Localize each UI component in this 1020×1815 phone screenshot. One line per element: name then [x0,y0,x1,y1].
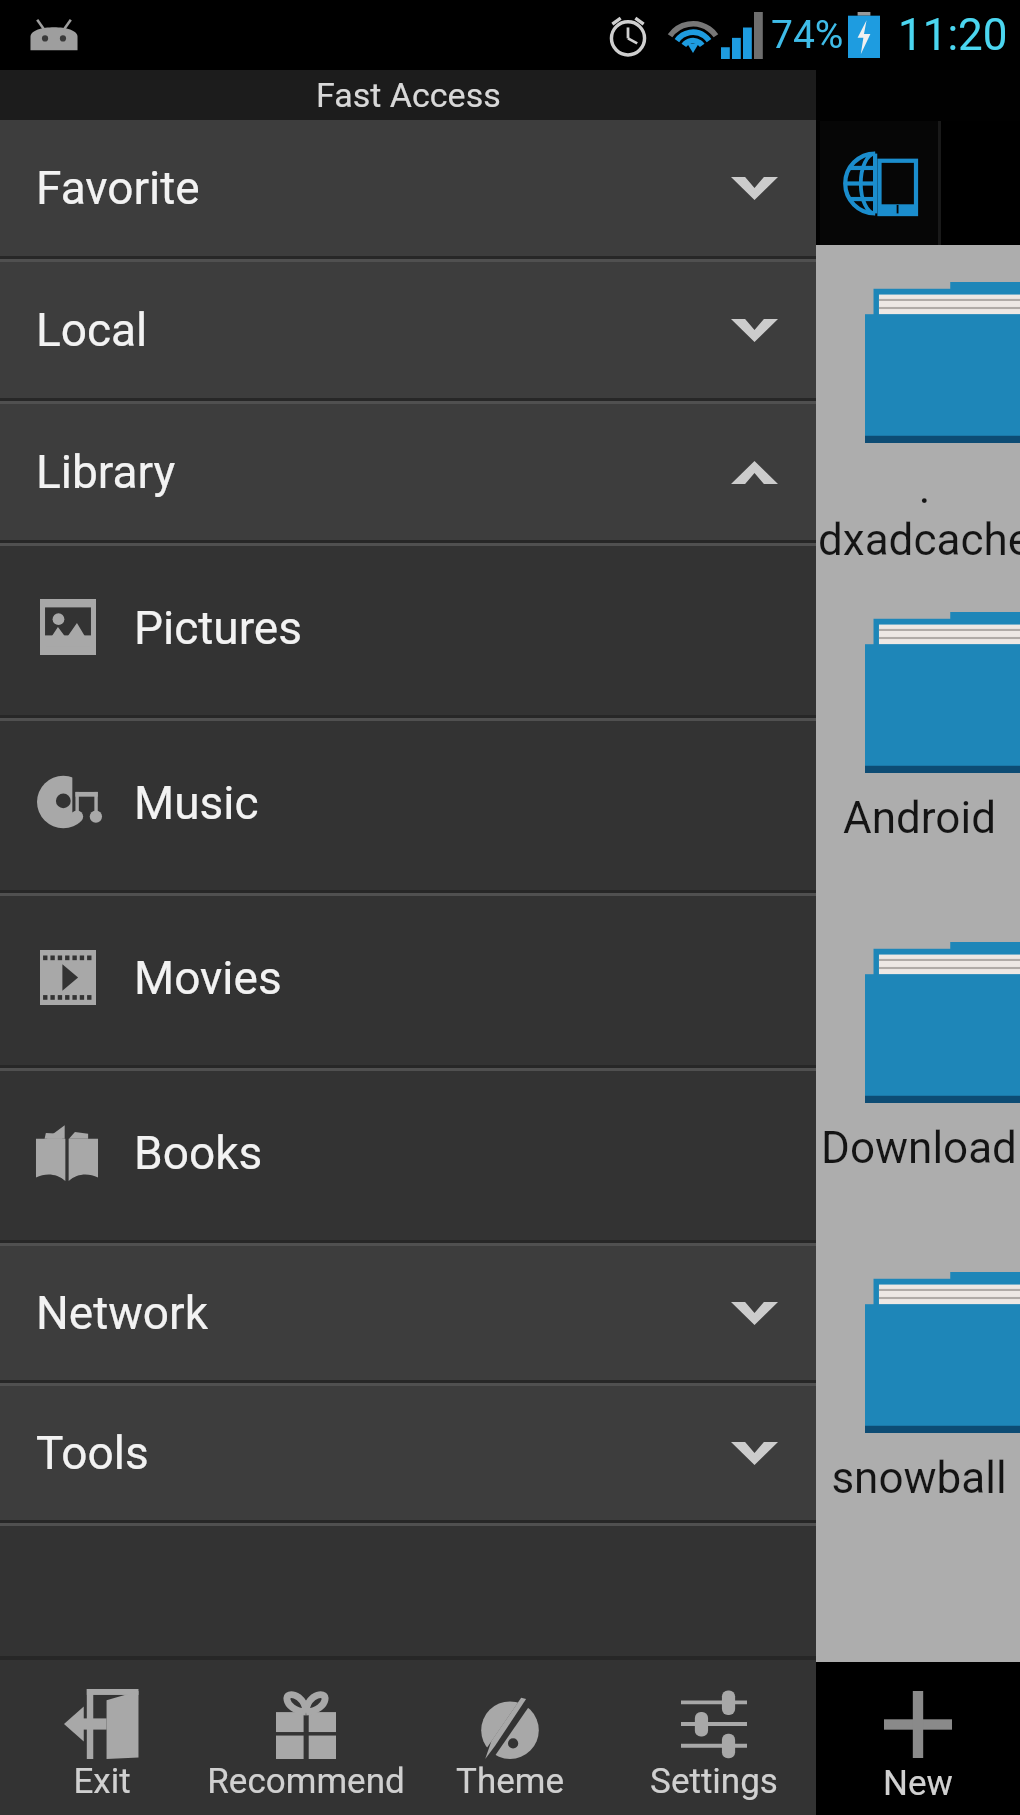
staticText: Library [36,445,176,499]
button[interactable]: Download [818,942,1020,1272]
button[interactable]: . dxadcache [818,282,1020,612]
staticText: New [883,1763,953,1804]
button[interactable]: Music [0,721,816,890]
button[interactable]: Library [0,404,816,540]
staticText: Tools [36,1426,149,1480]
button[interactable]: snowball [818,1272,1020,1602]
button[interactable]: Pictures [0,546,816,715]
button[interactable]: Android [818,612,1020,942]
staticText: Settings [650,1761,778,1802]
staticText: Local [36,303,148,357]
button[interactable]: Network [0,1246,816,1380]
staticText: Fast Access [316,75,501,115]
button[interactable]: Favorite [0,120,816,256]
staticText: 74% [771,12,844,58]
staticText: Pictures [134,601,302,655]
button[interactable]: Tools [0,1386,816,1520]
staticText: Books [134,1126,263,1180]
staticText: 11:20 [898,9,1008,61]
button[interactable]: Movies [0,896,816,1065]
staticText: Favorite [36,161,200,215]
staticText: Download [821,1122,1017,1174]
staticText: Exit [73,1761,131,1802]
button[interactable]: Theme [408,1660,612,1815]
button[interactable]: Books [0,1071,816,1240]
staticText: . dxadcache [818,462,1020,566]
button[interactable]: New [844,1662,992,1815]
staticText: Recommend [207,1761,405,1802]
button[interactable]: Settings [612,1660,816,1815]
button[interactable]: Exit [0,1660,204,1815]
staticText: Movies [134,951,282,1005]
staticText: Network [36,1286,208,1340]
staticText: Android [843,792,996,844]
button[interactable]: Local [0,262,816,398]
staticText: snowball [831,1452,1007,1504]
button[interactable]: Recommend [204,1660,408,1815]
button[interactable]: Remote manager [820,121,938,245]
staticText: Theme [456,1761,564,1802]
staticText: Music [134,776,259,830]
